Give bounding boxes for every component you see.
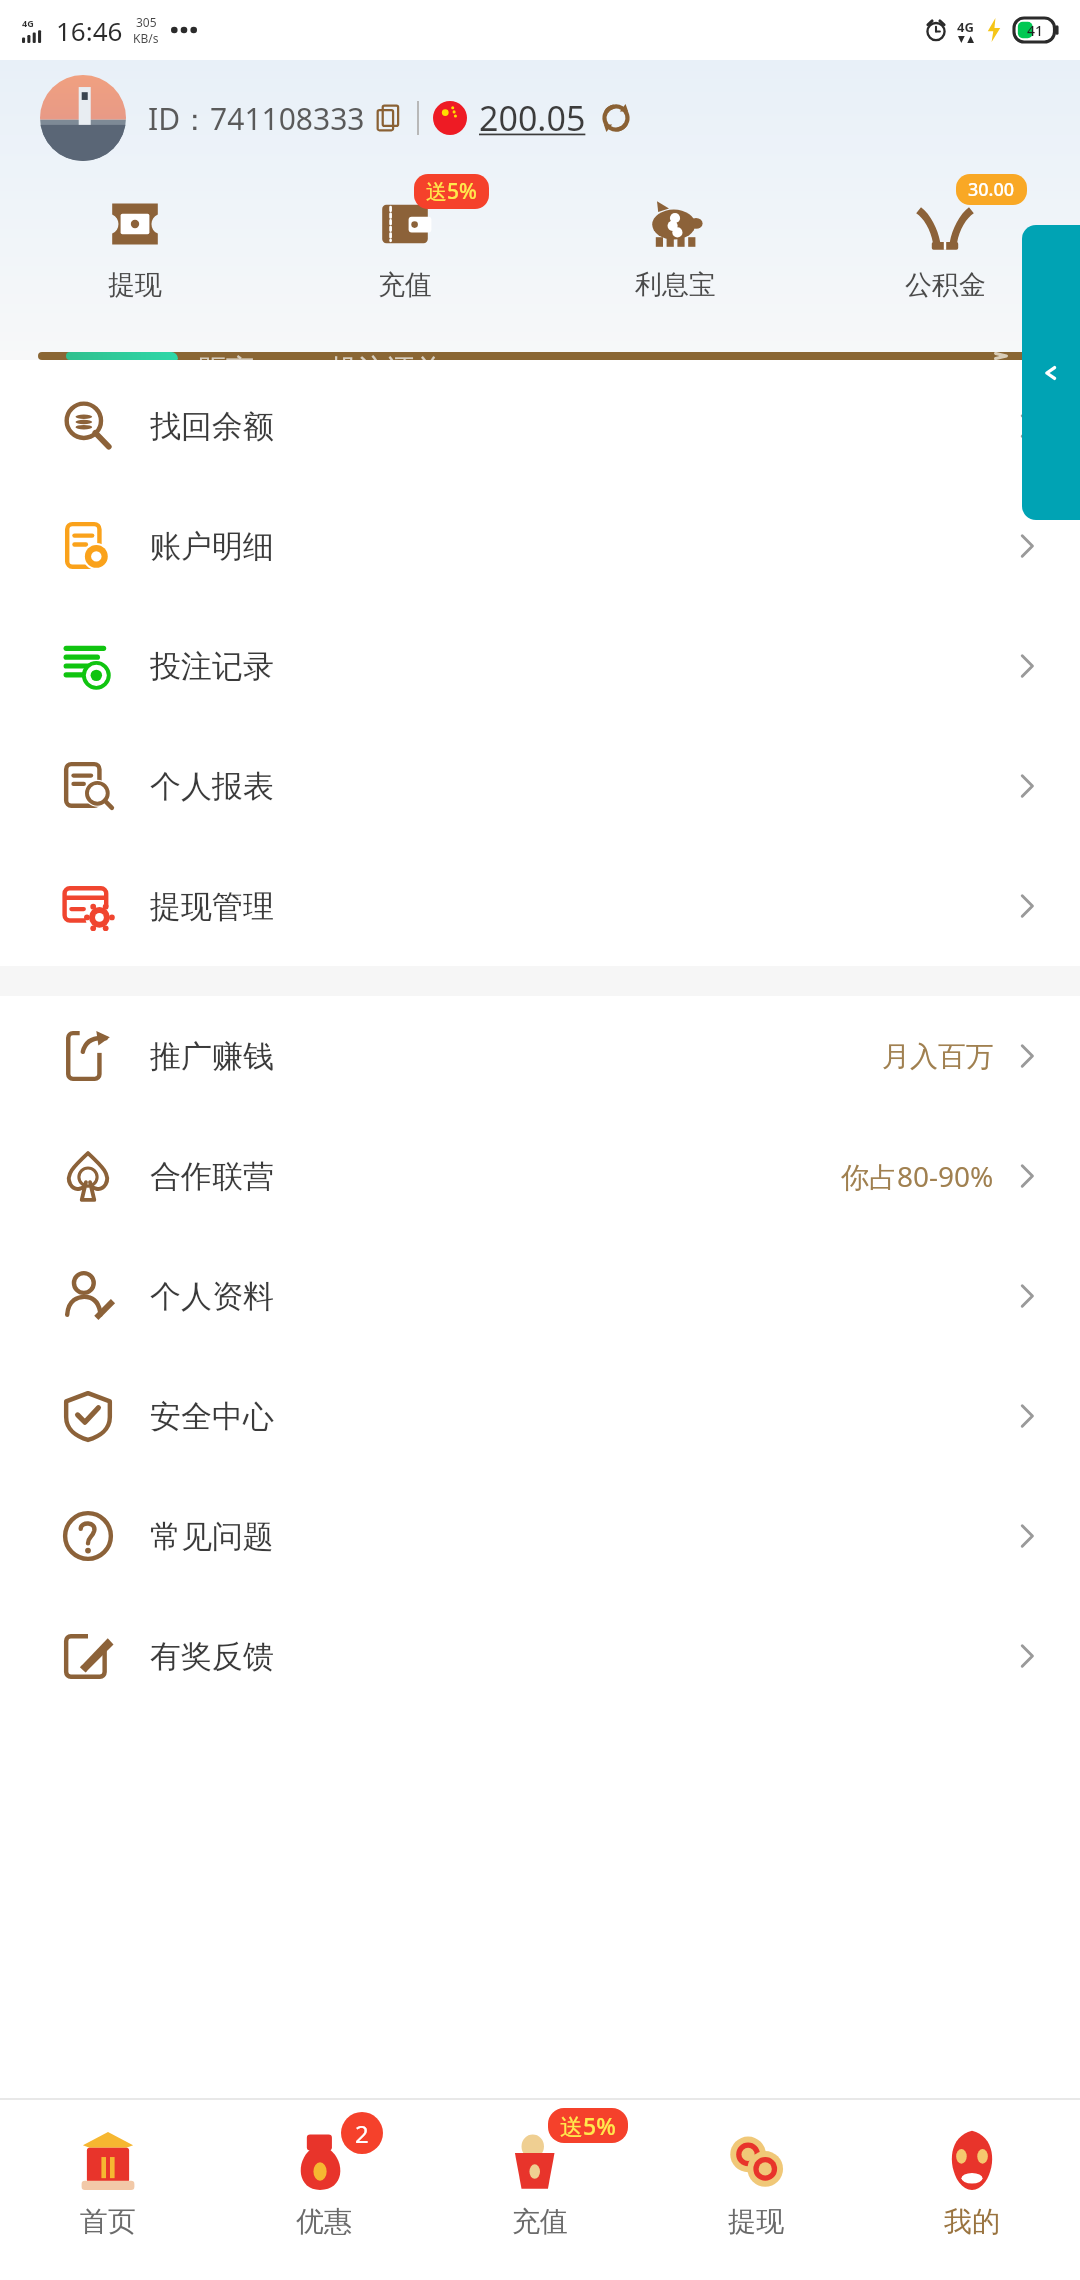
button[interactable]: 常见问题 — [0, 1476, 1080, 1596]
staticText: 4G — [22, 17, 34, 29]
button[interactable]: 个人报表 — [0, 726, 1080, 846]
staticText: 月入百万 — [882, 1039, 994, 1074]
button[interactable]: Avatar — [40, 75, 126, 161]
button[interactable]: 投注记录 — [0, 606, 1080, 726]
button[interactable]: 合作联营 — [0, 1116, 1080, 1236]
button[interactable]: 我的 — [864, 2100, 1080, 2280]
button[interactable]: 利息宝 — [540, 180, 810, 330]
staticText: ID：741108333 — [148, 98, 365, 139]
staticText: 利息宝 — [635, 268, 716, 302]
button[interactable]: 安全中心 — [0, 1356, 1080, 1476]
staticText: 2 — [355, 2117, 369, 2150]
staticText: 提现 — [108, 268, 162, 302]
button[interactable]: 推广赚钱 — [0, 996, 1080, 1116]
staticText: 安全中心 — [150, 1397, 274, 1436]
button[interactable]: 2 — [216, 2100, 432, 2280]
staticText: 优惠 — [296, 2204, 352, 2239]
button[interactable]: 送5% — [270, 180, 540, 330]
button[interactable]: 有奖反馈 — [0, 1596, 1080, 1716]
staticText: 你占80-90% — [841, 1157, 994, 1195]
staticText: 投注记录 — [150, 647, 274, 686]
staticText: 305 — [136, 14, 157, 30]
staticText: 提现 — [728, 2204, 784, 2239]
staticText: 4G — [957, 18, 974, 36]
staticText: 公积金 — [905, 268, 986, 302]
staticText: 送5% — [560, 2110, 616, 2141]
staticText: 16:46 — [56, 13, 123, 48]
button[interactable]: 找回余额 — [0, 366, 1080, 486]
staticText: 投注还差 — [330, 352, 442, 360]
staticText: 提现管理 — [150, 887, 274, 926]
staticText: 推广赚钱 — [150, 1037, 274, 1076]
staticText: 常见问题 — [150, 1517, 274, 1556]
staticText: 首页 — [80, 2204, 136, 2239]
button[interactable]: Copy ID — [373, 101, 407, 135]
button[interactable]: Collapse panel — [1022, 225, 1080, 520]
staticText: 账户明细 — [150, 527, 274, 566]
staticText: 200.05 — [479, 95, 586, 141]
button[interactable]: 个人资料 — [0, 1236, 1080, 1356]
button[interactable]: 首页 — [0, 2100, 216, 2280]
staticText: 41 — [1027, 21, 1044, 40]
staticText: 充值 — [512, 2204, 568, 2239]
button[interactable]: 账户明细 — [0, 486, 1080, 606]
staticText: KB/s — [133, 30, 159, 46]
staticText: 我的 — [944, 2204, 1000, 2239]
staticText: 充值 — [378, 268, 432, 302]
staticText: 距离 — [198, 352, 254, 360]
staticText: 个人资料 — [150, 1277, 274, 1316]
staticText: 有奖反馈 — [150, 1637, 274, 1676]
staticText: 合作联营 — [150, 1157, 274, 1196]
staticText: 个人报表 — [150, 767, 274, 806]
staticText: 找回余额 — [150, 407, 274, 446]
button[interactable]: Refresh balance — [596, 98, 636, 138]
button[interactable]: 30.00 — [810, 180, 1080, 330]
button[interactable]: 提现管理 — [0, 846, 1080, 966]
button[interactable]: 提现 — [648, 2100, 864, 2280]
button[interactable]: 提现 — [0, 180, 270, 330]
staticText: 30.00 — [968, 177, 1015, 202]
button[interactable]: 送5% — [432, 2100, 648, 2280]
staticText: 送5% — [426, 177, 477, 206]
button[interactable]: VIP — [38, 352, 1042, 360]
